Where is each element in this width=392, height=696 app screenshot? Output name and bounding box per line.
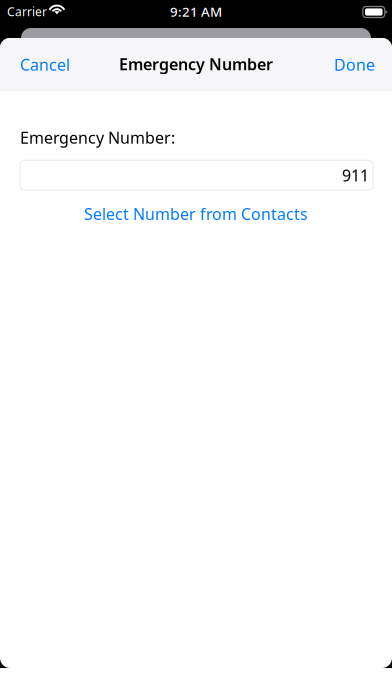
staticText: Carrier bbox=[7, 3, 47, 19]
button[interactable]: 911 bbox=[20, 160, 373, 190]
button[interactable]: Done bbox=[328, 45, 381, 84]
staticText: Done bbox=[334, 54, 375, 75]
staticText: Select Number from Contacts bbox=[84, 203, 308, 224]
staticText: 9:21 AM bbox=[170, 3, 222, 20]
staticText: Emergency Number bbox=[119, 53, 273, 75]
button[interactable]: Cancel bbox=[14, 45, 76, 84]
staticText: 911 bbox=[342, 165, 369, 186]
staticText: Cancel bbox=[20, 54, 70, 75]
button[interactable]: Select Number from Contacts bbox=[0, 203, 392, 224]
staticText: Emergency Number: bbox=[20, 127, 175, 148]
